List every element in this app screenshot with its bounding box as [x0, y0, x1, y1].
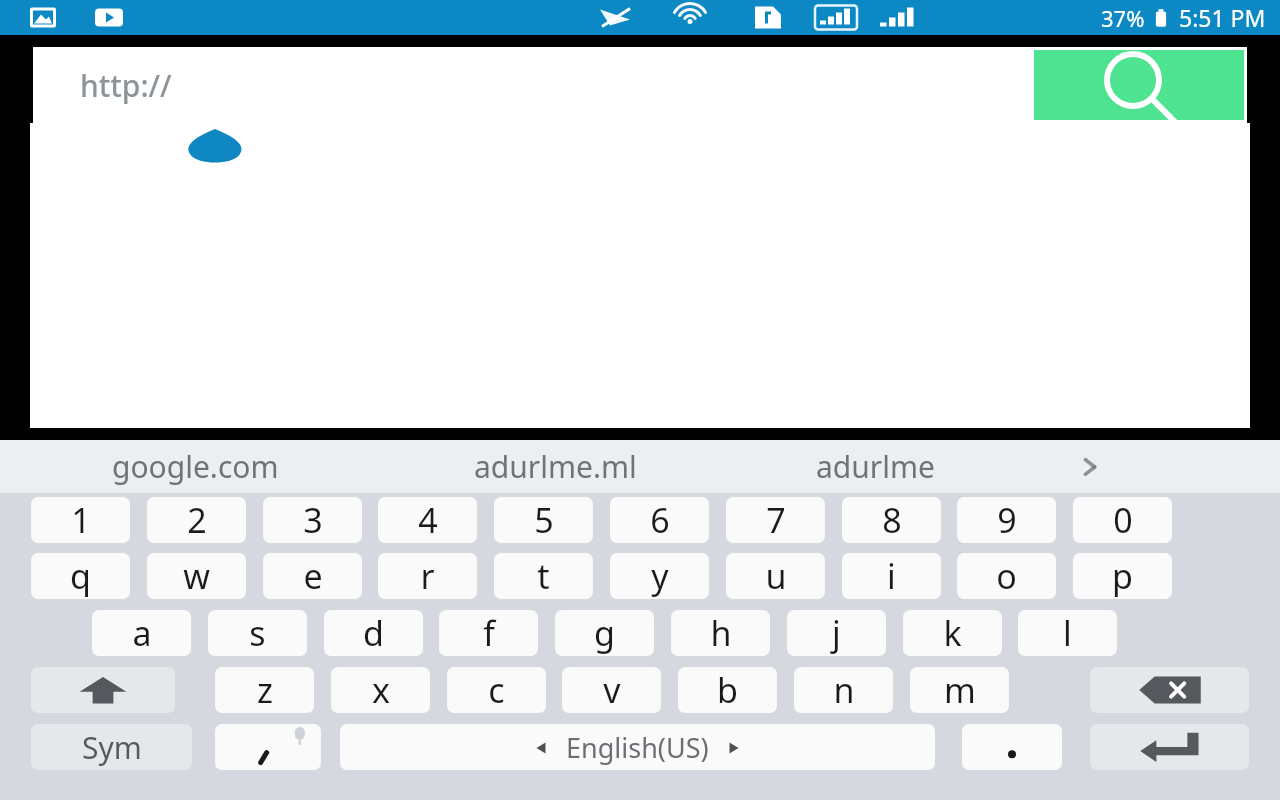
button[interactable]: http:// — [33, 47, 1247, 123]
button[interactable]: g — [555, 610, 654, 656]
button[interactable]: Search — [1034, 50, 1244, 120]
button[interactable]: 6 — [610, 497, 709, 543]
staticText: 8 — [882, 497, 902, 543]
staticText: 7 — [766, 497, 786, 543]
staticText: z — [257, 667, 273, 713]
staticText: 2 — [187, 497, 207, 543]
button[interactable]: b — [678, 667, 777, 713]
button[interactable]: i — [842, 553, 941, 599]
staticText: v — [603, 667, 621, 713]
staticText: adurlme — [816, 446, 935, 487]
staticText: k — [943, 610, 962, 656]
button[interactable]: 5 — [494, 497, 593, 543]
button[interactable]: j — [787, 610, 886, 656]
staticText: n — [833, 667, 855, 713]
staticText: i — [887, 553, 896, 599]
button[interactable]: m — [910, 667, 1009, 713]
staticText: 4 — [418, 497, 438, 543]
staticText: l — [1063, 610, 1072, 656]
staticText: u — [765, 553, 787, 599]
button[interactable]: w — [147, 553, 246, 599]
button[interactable]: l — [1018, 610, 1117, 656]
button[interactable]: n — [794, 667, 893, 713]
button[interactable]: a — [92, 610, 191, 656]
button[interactable]: c — [447, 667, 546, 713]
button[interactable]: q — [31, 553, 130, 599]
button[interactable]: d — [324, 610, 423, 656]
button[interactable]: Comma — [215, 724, 321, 770]
staticText: 6 — [650, 497, 670, 543]
button[interactable]: v — [562, 667, 661, 713]
staticText: y — [651, 553, 669, 599]
staticText: o — [996, 553, 1017, 599]
button[interactable]: 1 — [31, 497, 130, 543]
staticText: http:// — [80, 65, 172, 106]
button[interactable]: Shift — [31, 667, 175, 713]
staticText: j — [832, 610, 841, 656]
staticText: s — [249, 610, 266, 656]
staticText: 0 — [1113, 497, 1133, 543]
button[interactable]: r — [378, 553, 477, 599]
staticText: 1 — [71, 497, 91, 543]
staticText: e — [303, 553, 323, 599]
staticText: f — [483, 610, 495, 656]
staticText: a — [132, 610, 152, 656]
button[interactable]: Period — [962, 724, 1062, 770]
button[interactable]: s — [208, 610, 307, 656]
button[interactable]: Space — [340, 724, 935, 770]
button[interactable]: google.com — [0, 440, 390, 493]
staticText: h — [710, 610, 732, 656]
button[interactable]: o — [957, 553, 1056, 599]
staticText: t — [537, 553, 550, 599]
staticText: b — [717, 667, 738, 713]
button[interactable]: z — [215, 667, 314, 713]
button[interactable]: f — [439, 610, 538, 656]
button[interactable]: k — [903, 610, 1002, 656]
staticText: r — [420, 553, 435, 599]
staticText: p — [1112, 553, 1133, 599]
button[interactable]: h — [671, 610, 770, 656]
button[interactable]: 2 — [147, 497, 246, 543]
staticText: m — [944, 667, 976, 713]
button[interactable]: p — [1073, 553, 1172, 599]
button[interactable]: 9 — [957, 497, 1056, 543]
button[interactable]: More suggestions — [1030, 440, 1150, 493]
staticText: q — [70, 553, 91, 599]
button[interactable]: Sym — [31, 724, 192, 770]
button[interactable]: adurlme.ml — [390, 440, 720, 493]
staticText: google.com — [112, 446, 279, 487]
button[interactable]: Enter — [1090, 724, 1249, 770]
button[interactable]: 7 — [726, 497, 825, 543]
button[interactable]: adurlme — [720, 440, 1030, 493]
staticText: 37% — [1101, 3, 1145, 33]
staticText: Sym — [82, 727, 142, 768]
button[interactable]: e — [263, 553, 362, 599]
staticText: g — [594, 610, 615, 656]
staticText: 5:51 PM — [1179, 2, 1266, 33]
staticText: c — [488, 667, 505, 713]
staticText: 9 — [997, 497, 1017, 543]
button[interactable]: x — [331, 667, 430, 713]
button[interactable]: u — [726, 553, 825, 599]
staticText: d — [363, 610, 384, 656]
staticText: x — [372, 667, 390, 713]
button[interactable]: t — [494, 553, 593, 599]
button[interactable]: 8 — [842, 497, 941, 543]
staticText: English(US) — [566, 729, 709, 766]
button[interactable]: 0 — [1073, 497, 1172, 543]
staticText: adurlme.ml — [474, 446, 637, 487]
button[interactable]: Backspace — [1090, 667, 1249, 713]
staticText: 3 — [303, 497, 323, 543]
button[interactable]: y — [610, 553, 709, 599]
button[interactable]: 4 — [378, 497, 477, 543]
staticText: 5 — [534, 497, 554, 543]
staticText: w — [183, 553, 210, 599]
button[interactable]: 3 — [263, 497, 362, 543]
